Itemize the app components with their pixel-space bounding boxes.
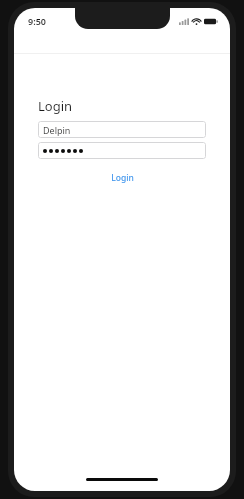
staticText: Delpin: [43, 124, 71, 136]
staticText: 9:50: [28, 15, 46, 27]
button[interactable]: Delpin: [38, 121, 206, 138]
other: Cellular signal: [179, 18, 189, 25]
staticText: Login: [111, 172, 134, 184]
other: Wi-Fi: [192, 18, 201, 25]
button[interactable]: [38, 142, 206, 159]
button[interactable]: Login: [38, 169, 206, 187]
staticText: Login: [38, 97, 73, 115]
other: Battery: [204, 18, 218, 25]
